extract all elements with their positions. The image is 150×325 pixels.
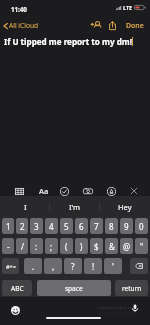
button[interactable]: 3	[30, 218, 43, 234]
button[interactable]: @	[120, 238, 133, 254]
staticText: (	[65, 241, 68, 252]
staticText: 0	[139, 221, 144, 232]
staticText: space	[65, 284, 83, 293]
button[interactable]: Markup	[104, 184, 118, 198]
staticText: :	[35, 241, 38, 252]
button[interactable]: ,	[44, 258, 62, 274]
button[interactable]: Close	[127, 184, 141, 198]
button[interactable]: 0	[135, 218, 148, 234]
staticText: -	[7, 241, 10, 252]
staticText: 2	[20, 221, 25, 232]
button[interactable]: Table	[12, 184, 26, 198]
staticText: return	[122, 284, 142, 293]
button[interactable]: 1	[2, 218, 14, 234]
staticText: /	[21, 241, 24, 252]
button[interactable]: 2	[16, 218, 28, 234]
button[interactable]: .	[24, 258, 42, 274]
button[interactable]: &	[105, 238, 118, 254]
staticText: Hey	[118, 202, 132, 212]
staticText: ?	[71, 261, 75, 272]
staticText: $	[94, 241, 99, 252]
button[interactable]: :	[30, 238, 43, 254]
button[interactable]: Aa	[37, 184, 51, 198]
staticText: "	[140, 241, 144, 252]
staticText: 6	[79, 221, 84, 232]
button[interactable]: -	[2, 238, 14, 254]
staticText: LTE	[123, 4, 133, 11]
button[interactable]: Hey	[100, 196, 150, 218]
button[interactable]: Share	[105, 18, 119, 32]
staticText: !	[92, 261, 95, 272]
button[interactable]: I	[0, 196, 50, 218]
button[interactable]: /	[16, 238, 28, 254]
button[interactable]: space	[37, 280, 111, 296]
button[interactable]: Checklist	[57, 184, 71, 198]
staticText: 8	[109, 221, 114, 232]
button[interactable]: Emoji	[9, 304, 21, 316]
button[interactable]: '	[104, 258, 122, 274]
button[interactable]: 8	[105, 218, 118, 234]
button[interactable]: 6	[75, 218, 88, 234]
button[interactable]: #+=	[2, 258, 19, 274]
button[interactable]: ABC	[2, 280, 32, 296]
button[interactable]: $	[90, 238, 103, 254]
button[interactable]: 7	[90, 218, 103, 234]
button[interactable]: Add people	[89, 18, 103, 32]
button[interactable]: Done	[123, 19, 147, 32]
button[interactable]: )	[75, 238, 88, 254]
button[interactable]: Dictate	[129, 302, 140, 313]
button[interactable]: ;	[45, 238, 58, 254]
button[interactable]: 5	[60, 218, 73, 234]
button[interactable]: return	[115, 280, 148, 296]
staticText: holdmyvodka.cc	[98, 305, 132, 311]
staticText: 3	[34, 221, 39, 232]
staticText: 7	[94, 221, 99, 232]
staticText: If U tipped me report to my dm!	[4, 36, 132, 47]
button[interactable]: 9	[120, 218, 133, 234]
staticText: Aa	[39, 186, 49, 196]
staticText: 1	[6, 221, 11, 232]
staticText: @	[123, 241, 131, 252]
staticText: &	[109, 241, 115, 252]
staticText: ABC	[11, 284, 24, 293]
staticText: )	[80, 241, 83, 252]
staticText: 5	[64, 221, 69, 232]
staticText: 11:40	[11, 5, 27, 13]
button[interactable]: Backspace	[130, 258, 148, 274]
button[interactable]: I'm	[50, 196, 100, 218]
button[interactable]: "	[135, 238, 148, 254]
staticText: Done	[126, 21, 144, 30]
button[interactable]: Camera	[81, 184, 95, 198]
staticText: ;	[50, 241, 53, 252]
staticText: .	[32, 261, 35, 272]
staticText: I'm	[69, 202, 81, 212]
button[interactable]: (	[60, 238, 73, 254]
staticText: All iCloud	[9, 21, 39, 30]
button[interactable]: !	[84, 258, 102, 274]
button[interactable]: ?	[64, 258, 82, 274]
staticText: '	[112, 261, 114, 272]
staticText: 4	[49, 221, 54, 232]
staticText: 9	[124, 221, 129, 232]
staticText: I	[24, 202, 27, 212]
button[interactable]: 4	[45, 218, 58, 234]
button[interactable]: All iCloud	[0, 21, 43, 30]
staticText: ,	[52, 261, 55, 272]
staticText: #+=	[6, 263, 16, 270]
